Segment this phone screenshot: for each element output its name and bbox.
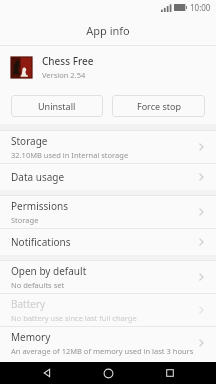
other: Open [196, 236, 208, 248]
staticText: Force stop [137, 100, 181, 112]
button[interactable]: Notifications [0, 229, 216, 255]
staticText: Notifications [11, 235, 71, 249]
button[interactable]: Memory [0, 327, 216, 359]
button[interactable]: Storage [0, 131, 216, 163]
other: Open [196, 171, 208, 183]
staticText: Chess Free [42, 54, 94, 68]
staticText: Version 2.54 [42, 70, 86, 80]
staticText: No battery use since last full charge [11, 313, 137, 323]
button[interactable]: Home [93, 362, 123, 384]
other: Open [196, 141, 208, 153]
other: Open [196, 271, 208, 283]
button[interactable]: Permissions [0, 196, 216, 228]
other: Open [196, 337, 208, 349]
staticText: 32.10MB used in Internal storage [11, 150, 129, 160]
button[interactable]: Back [32, 362, 62, 384]
staticText: Permissions [11, 199, 68, 213]
button[interactable]: Data usage [0, 164, 216, 190]
staticText: Memory [11, 330, 51, 344]
other: Open [196, 304, 208, 316]
staticText: Storage [11, 134, 48, 148]
staticText: No defaults set [11, 280, 65, 290]
other: Open [196, 206, 208, 218]
button[interactable]: Uninstall [11, 95, 103, 117]
staticText: Storage [11, 215, 39, 225]
button[interactable]: Recent apps [155, 362, 185, 384]
staticText: Battery [11, 297, 46, 311]
staticText: An average of 12MB of memory used in las… [11, 346, 194, 356]
button[interactable]: Battery [0, 294, 216, 326]
staticText: App info [86, 23, 130, 38]
button[interactable]: Open by default [0, 261, 216, 293]
button[interactable]: Force stop [112, 95, 205, 117]
staticText: Data usage [11, 170, 65, 184]
staticText: Uninstall [38, 100, 76, 112]
staticText: 10:00 [190, 2, 211, 13]
staticText: Open by default [11, 264, 87, 278]
